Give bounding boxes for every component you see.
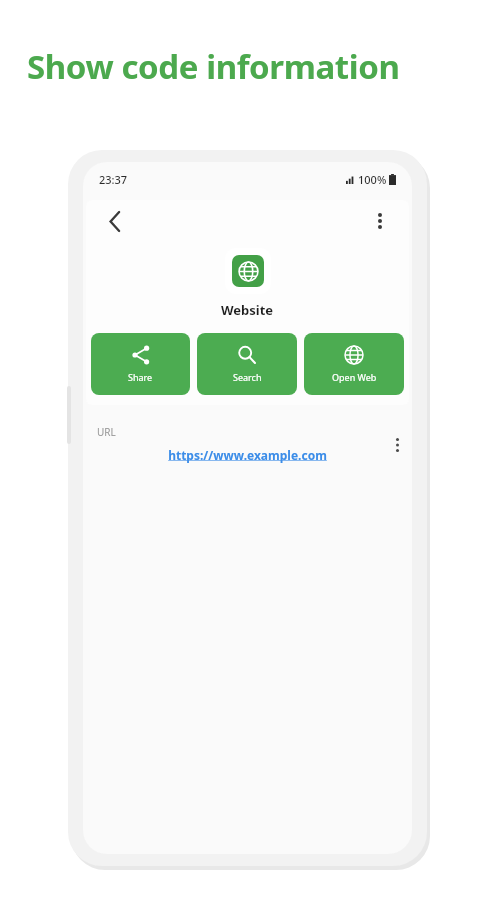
button[interactable]: Open Web xyxy=(304,333,404,395)
staticText: 100% xyxy=(358,172,387,187)
button[interactable]: URL options xyxy=(386,434,408,456)
staticText: URL xyxy=(97,425,116,439)
staticText: Search xyxy=(233,371,262,383)
staticText: 23:37 xyxy=(99,172,128,187)
button[interactable]: https://www.example.com xyxy=(83,447,412,463)
button[interactable]: More options xyxy=(365,206,395,236)
button[interactable]: Back xyxy=(100,206,130,236)
staticText: Share xyxy=(128,371,153,383)
button[interactable]: Share xyxy=(91,333,190,395)
button[interactable]: Search xyxy=(197,333,297,395)
staticText: Website xyxy=(221,301,274,319)
staticText: Show code information xyxy=(27,44,400,89)
staticText: Open Web xyxy=(332,371,377,383)
